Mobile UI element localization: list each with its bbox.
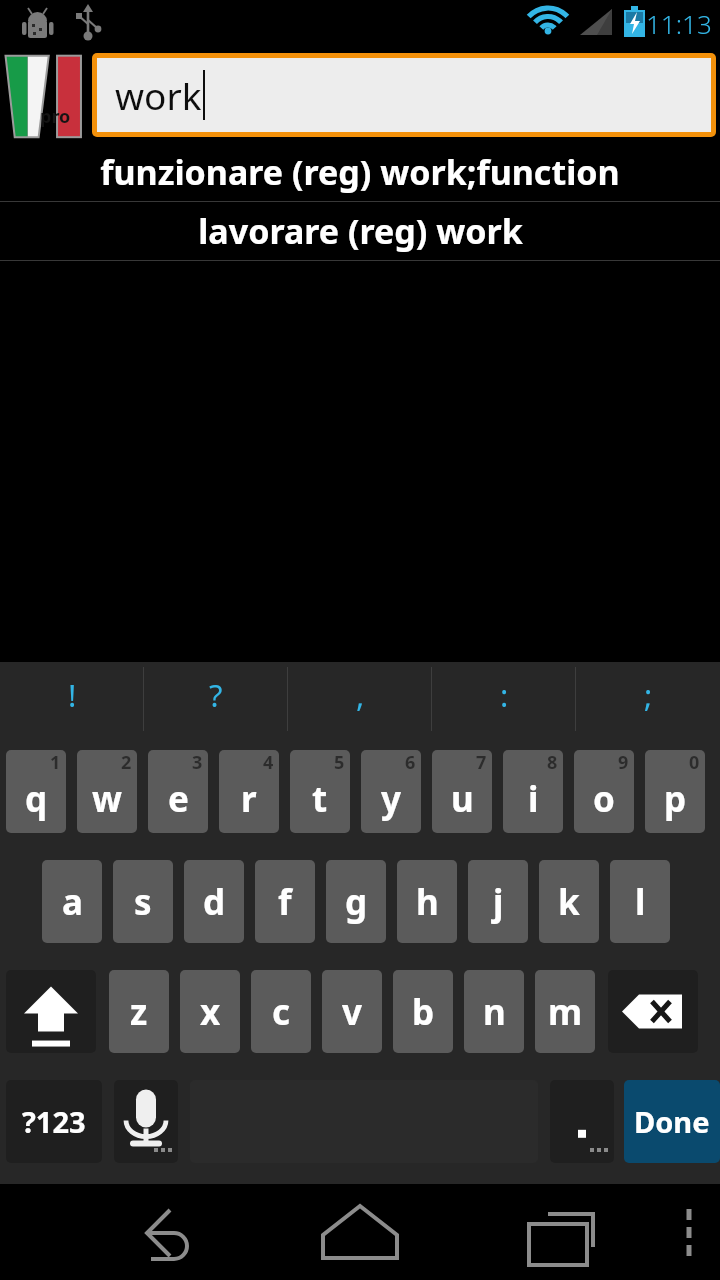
button[interactable]: ?123 bbox=[6, 1080, 102, 1163]
staticText: n bbox=[483, 988, 506, 1036]
button[interactable]: h bbox=[397, 860, 457, 943]
button[interactable]: z bbox=[109, 970, 169, 1053]
staticText: e bbox=[168, 775, 189, 823]
staticText: Done bbox=[634, 1102, 710, 1141]
staticText: ! bbox=[68, 674, 77, 716]
button[interactable]: a bbox=[42, 860, 102, 943]
button[interactable]: Voice input bbox=[114, 1080, 178, 1163]
button[interactable]: ; bbox=[576, 662, 720, 735]
button[interactable]: 6 bbox=[361, 750, 421, 833]
button[interactable]: c bbox=[251, 970, 311, 1053]
button[interactable]: Italian dictionary pro logo bbox=[0, 46, 92, 143]
button[interactable]: Back bbox=[110, 1184, 220, 1280]
staticText: u bbox=[451, 775, 474, 823]
button[interactable]: k bbox=[539, 860, 599, 943]
staticText: lavorare (reg) work bbox=[198, 208, 523, 254]
staticText: a bbox=[62, 878, 83, 926]
staticText: l bbox=[635, 878, 646, 926]
button[interactable]: 5 bbox=[290, 750, 350, 833]
button[interactable]: More options bbox=[650, 1184, 720, 1280]
button[interactable]: lavorare (reg) work bbox=[0, 202, 720, 260]
button[interactable]: , bbox=[288, 662, 432, 735]
staticText: ; bbox=[644, 674, 653, 716]
button[interactable]: 9 bbox=[574, 750, 634, 833]
staticText: b bbox=[412, 988, 435, 1036]
staticText: pro bbox=[40, 104, 71, 129]
button[interactable]: j bbox=[468, 860, 528, 943]
button[interactable]: 3 bbox=[148, 750, 208, 833]
button[interactable]: f bbox=[255, 860, 315, 943]
staticText: 4 bbox=[263, 750, 274, 775]
button[interactable]: 1 bbox=[6, 750, 66, 833]
staticText: j bbox=[493, 878, 504, 926]
button[interactable]: Recent apps bbox=[505, 1184, 615, 1280]
button[interactable]: 0 bbox=[645, 750, 705, 833]
staticText: m bbox=[548, 988, 583, 1036]
button[interactable]: Done bbox=[624, 1080, 720, 1163]
staticText: funzionare (reg) work;function bbox=[100, 149, 620, 195]
staticText: z bbox=[130, 988, 148, 1036]
staticText: 1 bbox=[50, 750, 61, 775]
button[interactable]: m bbox=[535, 970, 595, 1053]
staticText: 0 bbox=[689, 750, 700, 775]
staticText: k bbox=[558, 878, 580, 926]
staticText: ?123 bbox=[22, 1102, 86, 1141]
staticText: t bbox=[312, 775, 328, 823]
staticText: q bbox=[25, 775, 48, 823]
button[interactable]: : bbox=[432, 662, 576, 735]
staticText: work bbox=[115, 70, 202, 120]
staticText: 2 bbox=[121, 750, 132, 775]
button[interactable]: x bbox=[180, 970, 240, 1053]
button[interactable]: 7 bbox=[432, 750, 492, 833]
staticText: f bbox=[278, 878, 292, 926]
staticText: h bbox=[416, 878, 439, 926]
button[interactable]: l bbox=[610, 860, 670, 943]
button[interactable]: funzionare (reg) work;function bbox=[0, 143, 720, 201]
staticText: o bbox=[593, 775, 615, 823]
button[interactable]: ! bbox=[0, 662, 144, 735]
staticText: w bbox=[92, 775, 122, 823]
button[interactable]: Period bbox=[550, 1080, 614, 1163]
button[interactable]: Shift bbox=[6, 970, 96, 1053]
staticText: x bbox=[200, 988, 221, 1036]
staticText: 6 bbox=[405, 750, 416, 775]
staticText: r bbox=[241, 775, 257, 823]
staticText: : bbox=[500, 674, 509, 716]
button[interactable]: work bbox=[97, 58, 711, 132]
button[interactable]: 4 bbox=[219, 750, 279, 833]
button[interactable]: n bbox=[464, 970, 524, 1053]
button[interactable]: g bbox=[326, 860, 386, 943]
button[interactable]: Backspace bbox=[608, 970, 698, 1053]
staticText: 3 bbox=[192, 750, 203, 775]
staticText: 11:13 bbox=[646, 6, 712, 41]
staticText: y bbox=[381, 775, 401, 823]
button[interactable]: v bbox=[322, 970, 382, 1053]
staticText: , bbox=[356, 674, 365, 716]
staticText: i bbox=[528, 775, 539, 823]
staticText: g bbox=[345, 878, 368, 926]
staticText: d bbox=[203, 878, 226, 926]
button[interactable]: Home bbox=[300, 1184, 420, 1280]
button[interactable]: b bbox=[393, 970, 453, 1053]
staticText: 5 bbox=[334, 750, 345, 775]
button[interactable]: 8 bbox=[503, 750, 563, 833]
button[interactable]: ? bbox=[144, 662, 288, 735]
button[interactable]: d bbox=[184, 860, 244, 943]
staticText: 7 bbox=[476, 750, 487, 775]
button[interactable]: 2 bbox=[77, 750, 137, 833]
staticText: 8 bbox=[547, 750, 558, 775]
staticText: p bbox=[664, 775, 687, 823]
staticText: c bbox=[272, 988, 291, 1036]
staticText: s bbox=[134, 878, 152, 926]
button[interactable]: s bbox=[113, 860, 173, 943]
staticText: v bbox=[342, 988, 362, 1036]
staticText: 9 bbox=[618, 750, 629, 775]
staticText: ? bbox=[209, 674, 223, 716]
